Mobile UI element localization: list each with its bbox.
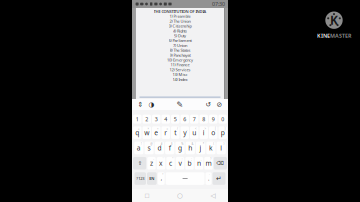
button[interactable]: b — [185, 157, 194, 169]
staticText: 4) Rights — [173, 28, 187, 33]
staticText: 07:30 — [212, 0, 225, 8]
button[interactable]: 6 — [180, 115, 189, 124]
button[interactable]: t — [171, 126, 179, 139]
staticText: / — [177, 127, 178, 130]
button[interactable]: w — [142, 126, 151, 139]
button[interactable]: f — [165, 142, 174, 154]
button[interactable]: Undo — [203, 98, 214, 110]
staticText: □ — [144, 192, 149, 199]
staticText: # — [161, 142, 163, 146]
staticText: d — [157, 143, 161, 152]
button[interactable]: ?123 — [134, 172, 146, 185]
button[interactable]: y — [180, 126, 189, 139]
staticText: y — [183, 128, 186, 137]
staticText: 4 — [164, 116, 167, 123]
button[interactable]: Home — [163, 189, 196, 202]
button[interactable]: Recents — [130, 189, 163, 202]
staticText: u — [192, 128, 196, 137]
button[interactable]: , — [158, 172, 165, 185]
button[interactable]: m — [204, 157, 213, 169]
staticText: × — [148, 127, 150, 130]
button[interactable]: p — [218, 126, 227, 139]
button[interactable]: e — [152, 126, 160, 139]
button[interactable]: z — [147, 157, 156, 169]
staticText: 3 — [155, 116, 158, 123]
button[interactable]: h — [186, 142, 195, 154]
staticText: ⇕ — [137, 101, 143, 108]
staticText: j — [200, 143, 202, 152]
staticText: THE CONSTITUTION OF INDIA — [153, 9, 206, 14]
button[interactable]: v — [176, 157, 184, 169]
button[interactable]: i — [199, 126, 208, 139]
staticText: ⊘ — [216, 101, 222, 108]
staticText: ↵ — [216, 175, 222, 182]
staticText: ✎ — [176, 100, 183, 109]
button[interactable]: u — [190, 126, 198, 139]
staticText: o — [211, 128, 215, 137]
button[interactable]: r — [161, 126, 170, 139]
button[interactable]: Back — [196, 189, 229, 202]
button[interactable]: 1 — [133, 115, 141, 124]
staticText: ◑ — [148, 101, 154, 108]
staticText: 10) Emergency — [167, 57, 193, 63]
button[interactable]: o — [209, 126, 217, 139]
staticText: ? — [210, 157, 211, 161]
button[interactable]: c — [166, 157, 175, 169]
button[interactable]: q — [133, 126, 141, 139]
button[interactable]: 2 — [142, 115, 151, 124]
staticText: g — [178, 143, 182, 152]
button[interactable]: 7 — [190, 115, 198, 124]
button[interactable]: . — [205, 172, 211, 185]
button[interactable]: s — [144, 142, 154, 154]
button[interactable]: 5 — [171, 115, 179, 124]
button[interactable]: Space — [166, 172, 204, 185]
button[interactable]: g — [175, 142, 185, 154]
staticText: p — [221, 128, 225, 137]
staticText: , — [201, 157, 202, 161]
staticText: + — [138, 127, 140, 130]
staticText: 1) Preamble — [169, 14, 190, 19]
button[interactable]: 0 — [218, 115, 227, 124]
button[interactable]: d — [155, 142, 164, 154]
button[interactable]: 4 — [161, 115, 170, 124]
button[interactable]: k — [206, 142, 215, 154]
staticText: 8) The States — [169, 48, 190, 53]
staticText: i — [203, 128, 205, 137]
staticText: ↺ — [205, 101, 211, 108]
staticText: 5) Duty — [174, 33, 186, 38]
button[interactable]: ⇧ — [133, 157, 146, 169]
button[interactable]: Edit — [174, 98, 185, 110]
button[interactable]: n — [195, 157, 203, 169]
staticText: s — [148, 143, 151, 152]
staticText: ⇧ — [138, 160, 142, 166]
button[interactable]: More — [214, 98, 225, 110]
button[interactable]: 3 — [152, 115, 160, 124]
staticText: q — [135, 128, 139, 137]
staticText: 12) Services — [169, 67, 190, 72]
button[interactable]: j — [196, 142, 205, 154]
staticText: · — [209, 173, 210, 176]
staticText: 0 — [221, 116, 224, 123]
staticText: @ — [150, 142, 152, 146]
button[interactable]: x — [157, 157, 165, 169]
button[interactable]: ⌫ — [214, 157, 227, 169]
staticText: ÷ — [157, 127, 159, 130]
staticText: w — [144, 128, 149, 137]
staticText: e — [154, 128, 158, 137]
button[interactable]: ↵ — [212, 172, 225, 185]
button[interactable]: l — [217, 142, 226, 154]
button[interactable]: a — [134, 142, 143, 154]
button[interactable]: 9 — [209, 115, 217, 124]
button[interactable]: 8 — [199, 115, 208, 124]
button[interactable]: EN — [147, 172, 157, 185]
staticText: ° — [162, 173, 163, 176]
button[interactable]: Indent — [135, 98, 146, 110]
staticText: k — [209, 143, 213, 152]
button[interactable]: Theme — [146, 98, 157, 110]
staticText: l — [220, 143, 222, 152]
